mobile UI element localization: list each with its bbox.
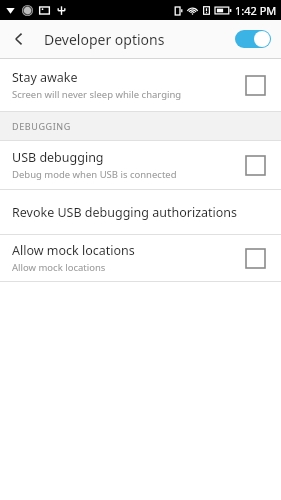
staticText: USB debugging (12, 149, 104, 166)
button[interactable]: Allow mock locations checkbox (241, 244, 269, 272)
staticText: Stay awake (12, 69, 78, 86)
button[interactable]: Stay awake checkbox (241, 71, 269, 99)
staticText: DEBUGGING (12, 120, 71, 132)
staticText: Allow mock locations (12, 242, 135, 259)
button[interactable]: USB debugging checkbox (241, 151, 269, 179)
staticText: 1:42 PM (235, 3, 277, 18)
staticText: Developer options (44, 30, 165, 49)
staticText: Screen will never sleep while charging (12, 88, 182, 101)
staticText: Revoke USB debugging authorizations (12, 204, 238, 221)
button[interactable]: Revoke USB debugging authorizations (0, 190, 281, 234)
button[interactable]: USB debugging (0, 141, 281, 189)
staticText: Debug mode when USB is connected (12, 168, 177, 181)
button[interactable]: Stay awake (0, 59, 281, 111)
button[interactable]: Allow mock locations (0, 235, 281, 281)
button[interactable]: Back (0, 20, 38, 58)
button[interactable]: Developer options toggle (235, 30, 271, 48)
staticText: Allow mock locations (12, 261, 106, 274)
